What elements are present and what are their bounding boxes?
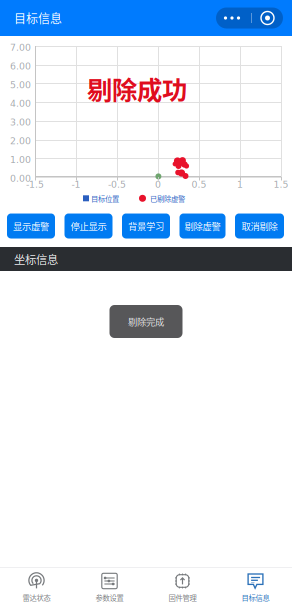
staticText: 0.5 (191, 179, 206, 190)
staticText: 背景学习 (128, 219, 164, 233)
button[interactable]: 背景学习 (122, 213, 170, 238)
button[interactable]: 固件管理 (146, 568, 219, 607)
staticText: 剔除完成 (128, 315, 164, 328)
staticText: 0 (155, 179, 161, 190)
button[interactable]: 取消剔除 (235, 213, 284, 238)
staticText: 0.00 (10, 173, 31, 184)
button[interactable]: Menu (216, 7, 283, 28)
staticText: 6.00 (10, 61, 31, 72)
staticText: 1 (237, 179, 243, 190)
button[interactable]: 剔除虚警 (179, 213, 225, 238)
staticText: 4.00 (10, 98, 31, 109)
button[interactable]: 雷达状态 (0, 568, 73, 607)
button[interactable]: 目标信息 (219, 568, 292, 607)
staticText: 7.00 (10, 42, 31, 53)
staticText: -1.5 (26, 179, 44, 190)
staticText: 停止显示 (70, 219, 106, 233)
staticText: 1.5 (273, 179, 288, 190)
staticText: -0.5 (108, 179, 126, 190)
staticText: 2.00 (10, 136, 31, 146)
staticText: 5.00 (10, 79, 31, 90)
staticText: 目标信息 (241, 592, 269, 603)
staticText: 目标位置 (91, 193, 119, 204)
staticText: 取消剔除 (241, 219, 277, 233)
button[interactable]: 参数设置 (73, 568, 146, 607)
staticText: 已剔除虚警 (150, 193, 185, 204)
button[interactable]: 停止显示 (64, 213, 112, 238)
staticText: 剔除成功 (87, 70, 187, 107)
staticText: 1.00 (10, 154, 31, 165)
staticText: 目标信息 (14, 9, 62, 27)
staticText: -1 (71, 179, 80, 190)
staticText: 剔除虚警 (184, 219, 220, 233)
staticText: 3.00 (10, 117, 31, 128)
staticText: 固件管理 (168, 592, 196, 603)
staticText: 坐标信息 (14, 251, 58, 267)
button[interactable]: 显示虚警 (7, 213, 55, 238)
staticText: 显示虚警 (13, 219, 49, 233)
button[interactable]: 剔除完成 (109, 305, 182, 338)
staticText: 雷达状态 (22, 592, 50, 603)
staticText: 参数设置 (95, 592, 123, 603)
